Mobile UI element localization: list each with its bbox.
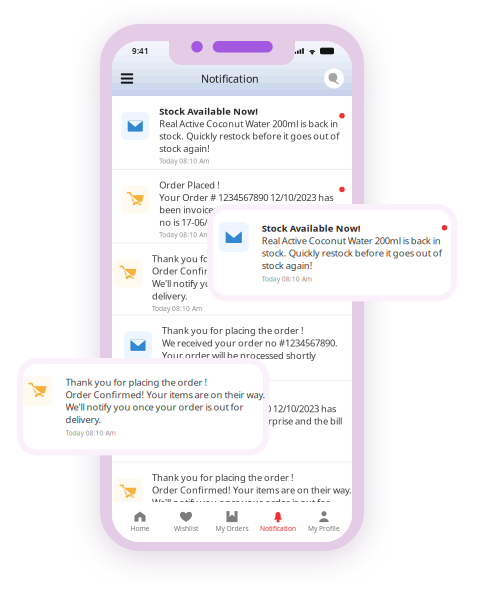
staticText: Order Confirmed! Your items are on their… xyxy=(152,484,352,496)
staticText: stock again! xyxy=(262,259,313,272)
staticText: My Profile xyxy=(308,524,340,533)
staticText: Order Placed ! xyxy=(162,390,223,402)
staticText: Today 08:10 Am xyxy=(262,275,312,283)
staticText: been invoiced by sri enterprise and the … xyxy=(159,203,339,216)
staticText: been invoiced by sri enterprise and the … xyxy=(162,415,342,427)
button[interactable]: Search xyxy=(322,63,346,93)
staticText: stock. Quickly restock before it goes ou… xyxy=(262,247,442,259)
staticText: Order Confirmed! Your items are on their… xyxy=(65,388,265,401)
button[interactable]: Stock Available Now! xyxy=(112,96,352,169)
staticText: We received your order no #1234567890. xyxy=(162,337,338,349)
staticText: Notification xyxy=(260,524,296,533)
staticText: Your order will be processed shortly xyxy=(162,349,316,361)
staticText: Thank you for placing the order ! xyxy=(65,376,207,388)
staticText: delivery. xyxy=(65,413,101,426)
staticText: Today 08:10 Am xyxy=(159,230,209,239)
button[interactable]: Thank you for placing the order ! xyxy=(112,315,352,380)
staticText: Today 08:10 Am xyxy=(152,523,202,532)
button[interactable]: Thank you for placing the order ! xyxy=(112,462,352,534)
button[interactable]: Notification xyxy=(255,511,301,533)
staticText: Today 08:10 Am xyxy=(159,157,209,165)
staticText: delivery. xyxy=(152,508,188,521)
button[interactable]: Menu xyxy=(116,63,138,93)
staticText: Real Active Coconut Water 200ml is back … xyxy=(159,117,338,130)
staticText: Order Confirmed! Your items are on their… xyxy=(152,265,352,277)
staticText: My Orders xyxy=(215,524,248,533)
staticText: Thank you for placing the order ! xyxy=(152,252,294,265)
staticText: Your Order # 1234567890 12/10/2023 has xyxy=(162,402,336,415)
staticText: Wishlist xyxy=(174,524,198,533)
button[interactable]: Wishlist xyxy=(163,511,209,533)
staticText: no is 17-06/ xyxy=(159,216,207,228)
staticText: Order Placed ! xyxy=(159,179,220,191)
staticText: We'll notify you once your order is out … xyxy=(152,496,330,508)
staticText: Today 08:10 Am xyxy=(152,304,202,313)
button[interactable]: My Profile xyxy=(301,511,347,533)
staticText: Your Order # 1234567890 12/10/2023 has xyxy=(159,191,333,203)
staticText: Real Active Coconut Water 200ml is back … xyxy=(262,234,441,247)
staticText: Stock Available Now! xyxy=(262,222,361,234)
staticText: We'll notify you once your order is out … xyxy=(152,277,330,290)
button[interactable]: Thank you for placing the order ! xyxy=(112,243,352,315)
staticText: Notification xyxy=(201,71,259,86)
staticText: stock again! xyxy=(159,142,210,155)
staticText: 9:41 xyxy=(132,46,149,56)
staticText: delivery. xyxy=(152,290,188,302)
staticText: We'll notify you once your order is out … xyxy=(65,401,243,413)
staticText: stock. Quickly restock before it goes ou… xyxy=(159,130,339,142)
staticText: Thank you for placing the order ! xyxy=(162,324,304,337)
button[interactable]: Home xyxy=(117,511,163,533)
button[interactable]: Order Placed ! xyxy=(112,381,352,462)
staticText: Thank you for placing the order ! xyxy=(152,471,294,484)
staticText: Home xyxy=(130,524,149,533)
button[interactable]: My Orders xyxy=(209,511,255,533)
staticText: Stock Available Now! xyxy=(159,105,258,117)
button[interactable]: Order Placed ! xyxy=(112,170,352,243)
staticText: Today 08:10 Am xyxy=(65,429,115,437)
